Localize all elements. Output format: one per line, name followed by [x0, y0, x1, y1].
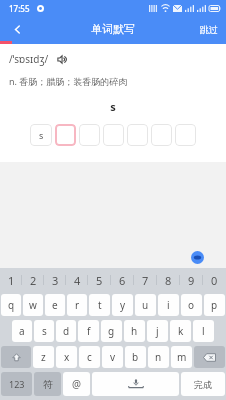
button[interactable]: 8 — [157, 268, 180, 292]
staticText: q — [8, 298, 15, 312]
staticText: 17:55 — [9, 3, 30, 14]
button[interactable]: 0 — [203, 268, 226, 292]
button[interactable] — [79, 124, 100, 146]
staticText: t — [98, 298, 102, 312]
button[interactable]: f — [78, 320, 99, 342]
staticText: 3 — [52, 273, 59, 288]
staticText: v — [110, 350, 116, 364]
button[interactable]: l — [193, 320, 214, 342]
staticText: 123 — [9, 378, 25, 390]
staticText: 9 — [188, 273, 195, 288]
button[interactable]: w — [23, 294, 43, 316]
staticText: 跳过 — [200, 24, 218, 35]
button[interactable]: 123 — [1, 372, 32, 396]
staticText: m — [177, 350, 187, 364]
staticText: s — [39, 129, 44, 141]
staticText: j — [156, 324, 159, 338]
button[interactable]: e — [45, 294, 65, 316]
staticText: s — [42, 324, 47, 338]
button[interactable]: d — [56, 320, 76, 342]
staticText: 符 — [43, 378, 53, 391]
button[interactable]: 2 — [22, 268, 44, 292]
button[interactable]: v — [102, 346, 123, 368]
staticText: u — [142, 298, 149, 312]
button[interactable]: x — [56, 346, 77, 368]
button[interactable]: 4 — [66, 268, 88, 292]
button[interactable]: Backspace — [194, 346, 225, 368]
staticText: s — [0, 99, 226, 114]
staticText: 5 — [96, 273, 103, 288]
staticText: o — [188, 298, 195, 312]
staticText: x — [64, 350, 70, 364]
button[interactable] — [103, 124, 124, 146]
button[interactable]: m — [171, 346, 192, 368]
button[interactable]: 6 — [111, 268, 134, 292]
staticText: w — [29, 298, 37, 312]
button[interactable]: 7 — [134, 268, 157, 292]
staticText: a — [19, 324, 25, 338]
button[interactable]: g — [101, 320, 122, 342]
staticText: f — [87, 324, 91, 338]
button[interactable]: Play pronunciation — [55, 52, 69, 66]
staticText: z — [41, 350, 46, 364]
button[interactable]: z — [33, 346, 54, 368]
button[interactable]: t — [89, 294, 110, 316]
staticText: y — [120, 298, 126, 312]
button[interactable]: Shift — [1, 346, 31, 368]
button[interactable]: s — [30, 124, 52, 146]
button[interactable]: j — [147, 320, 168, 342]
button[interactable]: r — [67, 294, 87, 316]
button[interactable]: n — [148, 346, 169, 368]
staticText: n. 香肠；腊肠；装香肠的碎肉 — [9, 75, 128, 87]
staticText: e — [52, 298, 58, 312]
staticText: h — [131, 324, 138, 338]
button[interactable] — [175, 124, 196, 146]
staticText: d — [63, 324, 70, 338]
staticText: 单词默写 — [91, 22, 135, 36]
staticText: n — [155, 350, 162, 364]
staticText: 0 — [211, 273, 218, 288]
button[interactable]: Space — [92, 372, 179, 396]
staticText: 4 — [74, 273, 81, 288]
button[interactable] — [151, 124, 172, 146]
button[interactable]: q — [1, 294, 21, 316]
staticText: b — [132, 350, 139, 364]
staticText: k — [178, 324, 184, 338]
button[interactable]: 9 — [180, 268, 203, 292]
button[interactable]: s — [34, 320, 54, 342]
button[interactable]: u — [135, 294, 156, 316]
staticText: 1 — [8, 273, 15, 288]
button[interactable]: Back — [0, 17, 34, 41]
staticText: r — [75, 298, 80, 312]
button[interactable]: p — [204, 294, 225, 316]
button[interactable]: 5 — [88, 268, 111, 292]
button[interactable]: c — [79, 346, 100, 368]
button[interactable]: k — [170, 320, 191, 342]
staticText: c — [87, 350, 92, 364]
staticText: /ˈsɒsɪdʒ/ — [9, 52, 49, 66]
button[interactable] — [55, 124, 76, 146]
staticText: @ — [72, 377, 81, 391]
button[interactable]: 1 — [0, 268, 22, 292]
button[interactable]: 完成 — [181, 372, 225, 396]
button[interactable]: @ — [63, 372, 90, 396]
button[interactable]: 符 — [34, 372, 61, 396]
staticText: g — [108, 324, 115, 338]
button[interactable]: 跳过 — [192, 17, 226, 41]
staticText: 6 — [119, 273, 126, 288]
staticText: 2 — [30, 273, 37, 288]
button[interactable]: Keyboard settings — [191, 251, 204, 264]
button[interactable]: h — [124, 320, 145, 342]
button[interactable]: b — [125, 346, 146, 368]
button[interactable]: y — [112, 294, 133, 316]
staticText: l — [202, 324, 205, 338]
button[interactable]: a — [12, 320, 32, 342]
button[interactable]: 3 — [44, 268, 66, 292]
staticText: 7 — [142, 273, 149, 288]
button[interactable]: i — [158, 294, 179, 316]
staticText: 8 — [165, 273, 172, 288]
button[interactable] — [127, 124, 148, 146]
staticText: i — [167, 298, 170, 312]
button[interactable]: o — [181, 294, 202, 316]
staticText: p — [211, 298, 218, 312]
